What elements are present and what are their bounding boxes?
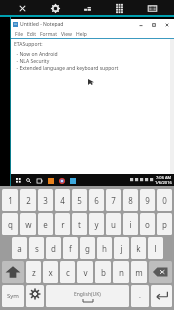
button[interactable]: 7: [106, 189, 121, 211]
button[interactable]: 9: [140, 189, 155, 211]
button[interactable]: m: [131, 261, 147, 283]
staticText: c: [66, 267, 70, 278]
button[interactable]: Enter: [151, 285, 172, 307]
button[interactable]: Close: [160, 19, 173, 30]
staticText: r: [61, 219, 65, 230]
button[interactable]: b: [95, 261, 111, 283]
staticText: - NLA Security: [14, 58, 50, 65]
button[interactable]: Search: [23, 175, 34, 186]
staticText: 1: [8, 195, 13, 206]
button[interactable]: Minimize: [134, 19, 147, 30]
staticText: 7:06 AM: [156, 175, 172, 180]
staticText: j: [120, 243, 123, 254]
staticText: z: [32, 267, 36, 278]
button[interactable]: u: [106, 213, 121, 235]
button[interactable]: App: [45, 175, 56, 186]
staticText: y: [94, 219, 99, 230]
staticText: 0: [162, 195, 167, 206]
button[interactable]: z: [26, 261, 41, 283]
button[interactable]: Maximize: [147, 19, 160, 30]
button[interactable]: Edit: [25, 31, 38, 38]
button[interactable]: h: [97, 237, 112, 259]
button[interactable]: App: [67, 175, 78, 186]
staticText: Help: [76, 31, 87, 38]
button[interactable]: Backspace: [149, 261, 172, 283]
staticText: x: [48, 267, 53, 278]
button[interactable]: Start: [14, 176, 23, 185]
staticText: m: [135, 267, 143, 278]
button[interactable]: Keypad: [109, 1, 129, 16]
staticText: .: [139, 291, 141, 301]
staticText: w: [25, 219, 32, 230]
button[interactable]: q: [2, 213, 18, 235]
button[interactable]: x: [43, 261, 58, 283]
button[interactable]: App: [56, 175, 67, 186]
button[interactable]: v: [77, 261, 93, 283]
button[interactable]: s: [29, 237, 44, 259]
staticText: Edit: [27, 31, 36, 38]
button[interactable]: Format: [38, 31, 59, 38]
button[interactable]: 6: [89, 189, 104, 211]
staticText: 5: [77, 195, 82, 206]
staticText: 3: [43, 195, 48, 206]
button[interactable]: c: [60, 261, 75, 283]
button[interactable]: r: [55, 213, 70, 235]
button[interactable]: i: [123, 213, 138, 235]
staticText: 2: [26, 195, 31, 206]
button[interactable]: j: [114, 237, 129, 259]
staticText: g: [85, 243, 90, 254]
button[interactable]: 8: [123, 189, 138, 211]
staticText: 6: [94, 195, 99, 206]
staticText: e: [43, 219, 48, 230]
button[interactable]: p: [157, 213, 172, 235]
button[interactable]: Settings: [26, 285, 44, 307]
button[interactable]: n: [113, 261, 129, 283]
button[interactable]: w: [20, 213, 36, 235]
button[interactable]: a: [12, 237, 27, 259]
button[interactable]: Settings: [45, 1, 65, 16]
button[interactable]: File: [13, 31, 25, 38]
staticText: ETASupport:: [14, 41, 43, 48]
staticText: 4: [60, 195, 65, 206]
button[interactable]: f: [63, 237, 78, 259]
button[interactable]: View: [59, 31, 74, 38]
button[interactable]: Close: [12, 1, 32, 16]
staticText: q: [8, 219, 13, 230]
staticText: Untitled - Notepad: [20, 21, 64, 28]
button[interactable]: Sym: [2, 285, 24, 307]
button[interactable]: 5: [72, 189, 87, 211]
staticText: d: [51, 243, 56, 254]
button[interactable]: o: [140, 213, 155, 235]
button[interactable]: Task view: [34, 175, 45, 186]
staticText: Format: [40, 31, 57, 38]
button[interactable]: 1: [2, 189, 18, 211]
staticText: k: [136, 243, 141, 254]
staticText: l: [154, 243, 157, 254]
staticText: 1/6/2016: [155, 180, 172, 185]
staticText: English(UK): [74, 291, 101, 298]
button[interactable]: .: [131, 285, 149, 307]
staticText: v: [83, 267, 88, 278]
staticText: - Now on Android: [14, 51, 58, 58]
staticText: 7: [111, 195, 116, 206]
button[interactable]: Keyboard: [142, 1, 162, 16]
staticText: a: [17, 243, 22, 254]
button[interactable]: k: [131, 237, 146, 259]
button[interactable]: t: [72, 213, 87, 235]
button[interactable]: d: [46, 237, 61, 259]
button[interactable]: Shift: [2, 261, 24, 283]
button[interactable]: 2: [20, 189, 36, 211]
button[interactable]: g: [80, 237, 95, 259]
staticText: View: [61, 31, 72, 38]
button[interactable]: 0: [157, 189, 172, 211]
button[interactable]: Help: [74, 31, 89, 38]
button[interactable]: 4: [55, 189, 70, 211]
button[interactable]: l: [148, 237, 163, 259]
button[interactable]: Touchpad: [77, 1, 97, 16]
button[interactable]: y: [89, 213, 104, 235]
button[interactable]: e: [38, 213, 53, 235]
staticText: p: [162, 219, 167, 230]
button[interactable]: Space: [46, 285, 129, 307]
staticText: n: [119, 267, 124, 278]
button[interactable]: 3: [38, 189, 53, 211]
